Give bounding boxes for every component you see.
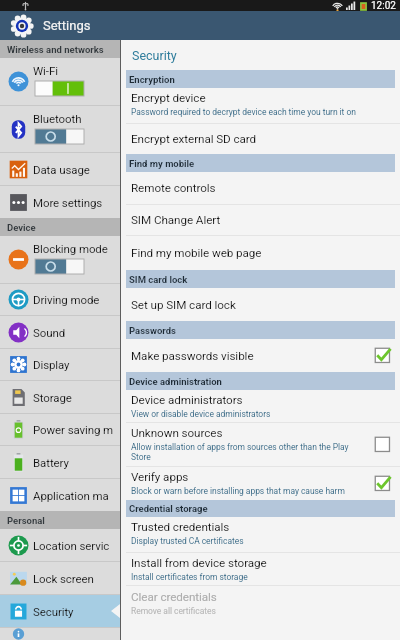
button[interactable]: Find my mobile web page (121, 236, 400, 270)
button[interactable]: Checkbox (374, 436, 392, 454)
staticText: Make passwords visible (131, 349, 254, 363)
staticText: Wireless and networks (7, 44, 104, 55)
staticText: Block or warn before installing apps tha… (131, 486, 345, 496)
staticText: Security (33, 605, 74, 618)
staticText: Unknown sources (131, 426, 223, 440)
staticText: View or disable device administrators (131, 409, 271, 419)
staticText: Remote controls (131, 181, 216, 195)
staticText: Display (33, 358, 70, 371)
staticText: 12:02 (371, 0, 396, 11)
staticText: Install certificates from storage (131, 572, 248, 582)
button[interactable]: Unknown sources (121, 423, 400, 466)
staticText: Battery (33, 456, 69, 469)
button[interactable]: Bluetooth (0, 106, 120, 152)
staticText: Passwords (129, 325, 176, 336)
staticText: Encrypt device (131, 91, 206, 105)
staticText: Personal (7, 515, 45, 526)
staticText: Driving mode (33, 293, 100, 306)
button[interactable]: Trusted credentials (121, 517, 400, 552)
staticText: Sound (33, 326, 66, 339)
button[interactable]: Device administrators (121, 390, 400, 422)
staticText: Device administrators (131, 393, 243, 407)
staticText: SIM Change Alert (131, 213, 221, 227)
button[interactable]: Make passwords visible (121, 339, 400, 372)
staticText: Encrypt external SD card (131, 132, 257, 146)
staticText: Storage (33, 391, 72, 404)
button[interactable]: Switch off (35, 129, 84, 144)
button[interactable]: Security (0, 595, 120, 627)
staticText: Credential storage (129, 503, 208, 514)
staticText: Password required to decrypt device each… (131, 107, 356, 117)
staticText: Install from device storage (131, 556, 267, 570)
staticText: More settings (33, 196, 103, 209)
button[interactable]: Driving mode (0, 284, 120, 315)
button[interactable]: Verify apps (121, 467, 400, 500)
button[interactable]: More settings (0, 186, 120, 218)
staticText: Data usage (33, 163, 90, 176)
staticText: Clear credentials (131, 590, 217, 604)
button[interactable]: Display (0, 349, 120, 380)
staticText: Blocking mode (33, 242, 108, 255)
button[interactable]: About device (0, 628, 120, 640)
button[interactable]: Clear credentials (121, 586, 400, 640)
staticText: Lock screen (33, 572, 94, 585)
button[interactable]: Battery (0, 446, 120, 478)
staticText: Trusted credentials (131, 520, 230, 534)
button[interactable]: Power saving m (0, 414, 120, 445)
staticText: Bluetooth (33, 112, 82, 125)
staticText: Allow installation of apps from sources … (131, 442, 364, 462)
button[interactable]: Lock screen (0, 562, 120, 594)
staticText: Device administration (129, 376, 222, 387)
staticText: Settings (43, 18, 91, 33)
staticText: Remove all certificates (131, 606, 216, 616)
staticText: Security (132, 48, 177, 63)
staticText: Application ma (33, 489, 109, 502)
button[interactable]: Encrypt device (121, 88, 400, 123)
button[interactable]: Sound (0, 316, 120, 348)
button[interactable]: Switch off (35, 259, 84, 274)
staticText: Verify apps (131, 470, 189, 484)
button[interactable]: Data usage (0, 153, 120, 185)
button[interactable]: Application ma (0, 479, 120, 511)
staticText: SIM card lock (129, 274, 188, 285)
button[interactable]: Encrypt external SD card (121, 124, 400, 154)
button[interactable]: Storage (0, 381, 120, 413)
staticText: Find my mobile (129, 158, 195, 169)
button[interactable]: Checkbox (374, 347, 392, 365)
button[interactable]: Checkbox (374, 475, 392, 493)
staticText: Encryption (129, 74, 175, 85)
staticText: Device (7, 222, 36, 233)
button[interactable]: Wi-Fi (0, 58, 120, 105)
button[interactable]: SIM Change Alert (121, 205, 400, 235)
button[interactable]: Remote controls (121, 172, 400, 204)
button[interactable]: Switch on (35, 81, 84, 96)
staticText: Power saving m (33, 423, 114, 436)
staticText: Wi-Fi (33, 64, 58, 77)
staticText: Display trusted CA certificates (131, 536, 244, 546)
button[interactable]: Install from device storage (121, 553, 400, 585)
staticText: Find my mobile web page (131, 246, 262, 260)
staticText: Location servic (33, 539, 110, 552)
button[interactable]: Set up SIM card lock (121, 288, 400, 321)
button[interactable]: Blocking mode (0, 236, 120, 283)
button[interactable]: Location servic (0, 529, 120, 561)
staticText: Set up SIM card lock (131, 298, 236, 312)
